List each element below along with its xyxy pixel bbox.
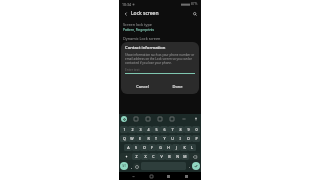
button[interactable]: . [187, 162, 191, 170]
button[interactable]: Clipboard [157, 116, 163, 122]
button[interactable]: 8 [176, 126, 184, 133]
button[interactable]: I [176, 135, 184, 142]
button[interactable]: F [148, 144, 156, 151]
staticText: L [191, 145, 193, 150]
staticText: U [171, 136, 174, 141]
staticText: P [195, 136, 198, 141]
staticText: S [135, 145, 137, 150]
button[interactable]: Search [191, 10, 198, 17]
staticText: 3 [139, 127, 142, 132]
button[interactable]: B [165, 153, 173, 160]
button[interactable]: 9 [184, 126, 192, 133]
button[interactable]: X [141, 153, 149, 160]
button[interactable]: Backspace [189, 153, 200, 160]
staticText: Dynamic Lock screen [123, 36, 161, 41]
button[interactable]: 2 [128, 126, 136, 133]
button[interactable]: S [132, 144, 140, 151]
staticText: R [147, 136, 150, 141]
staticText: T [155, 136, 157, 141]
button[interactable]: Q [120, 135, 128, 142]
staticText: E [139, 136, 141, 141]
staticText: Y [163, 136, 166, 141]
button[interactable]: V [157, 153, 165, 160]
button[interactable]: C [149, 153, 157, 160]
staticText: Q [123, 136, 126, 141]
button[interactable]: Recents [165, 173, 172, 180]
button[interactable]: 0 [192, 126, 200, 133]
button[interactable]: Emoji [169, 116, 175, 122]
button[interactable]: M [181, 153, 189, 160]
button[interactable]: Done [160, 82, 195, 91]
staticText: Screen lock type [123, 22, 152, 27]
staticText: 0 [195, 127, 198, 132]
staticText: 2 [131, 127, 134, 132]
button[interactable]: N [173, 153, 181, 160]
button[interactable]: E [136, 135, 144, 142]
button[interactable]: K [180, 144, 188, 151]
button[interactable]: 4 [144, 126, 152, 133]
staticText: J [176, 145, 177, 150]
staticText: !#1 [122, 164, 127, 168]
button[interactable]: D [140, 144, 148, 151]
button[interactable]: H [164, 144, 172, 151]
staticText: D [143, 145, 146, 150]
staticText: Z [135, 154, 138, 159]
staticText: 7 [171, 127, 174, 132]
button[interactable]: Back [122, 10, 129, 17]
button[interactable]: R [144, 135, 152, 142]
button[interactable]: Voice input [193, 116, 199, 122]
button[interactable]: Done [192, 162, 200, 170]
button[interactable]: GIF [145, 116, 151, 122]
button[interactable]: U [168, 135, 176, 142]
staticText: Done [172, 84, 183, 89]
button[interactable]: 6 [160, 126, 168, 133]
staticText: A [127, 145, 130, 150]
button[interactable]: P [192, 135, 200, 142]
button[interactable]: O [184, 135, 192, 142]
staticText: 5 [155, 127, 158, 132]
button[interactable]: T [152, 135, 160, 142]
staticText: C [152, 154, 155, 159]
button[interactable]: More [181, 116, 187, 122]
staticText: K [183, 145, 186, 150]
button[interactable]: Shift [120, 153, 132, 160]
button[interactable]: Back [130, 173, 137, 180]
button[interactable]: Symbols [120, 162, 128, 170]
staticText: 1 [123, 127, 126, 132]
staticText: , [131, 164, 132, 169]
button[interactable]: Settings [121, 116, 127, 122]
button[interactable]: Y [160, 135, 168, 142]
staticText: M [183, 154, 187, 159]
staticText: Contact information [125, 45, 166, 51]
button[interactable]: Emoji [133, 163, 140, 170]
staticText: N [176, 154, 179, 159]
button[interactable]: 7 [168, 126, 176, 133]
button[interactable]: Enter text [125, 68, 195, 74]
staticText: Cancel [136, 84, 149, 89]
button[interactable]: Dynamic Lock screen [123, 36, 197, 41]
button[interactable]: Home [148, 173, 155, 180]
button[interactable]: Z [132, 153, 141, 160]
staticText: 87% [191, 2, 198, 6]
staticText: Lock screen [131, 10, 159, 17]
staticText: Enter text [125, 68, 140, 72]
staticText: B [168, 154, 171, 159]
button[interactable]: W [128, 135, 136, 142]
staticText: F [151, 145, 153, 150]
button[interactable]: , [129, 162, 133, 170]
button[interactable]: Stickers [133, 116, 139, 122]
button[interactable]: Cancel [125, 82, 160, 91]
button[interactable]: 3 [136, 126, 144, 133]
button[interactable]: L [188, 144, 196, 151]
button[interactable]: Hide keyboard [183, 173, 190, 180]
button[interactable]: Screen lock type [123, 22, 197, 32]
button[interactable]: G [156, 144, 164, 151]
staticText: Pattern, Fingerprints [123, 28, 155, 32]
button[interactable]: A [124, 144, 132, 151]
staticText: 9 [187, 127, 190, 132]
button[interactable]: 5 [152, 126, 160, 133]
button[interactable]: J [172, 144, 180, 151]
staticText: 8 [179, 127, 182, 132]
button[interactable]: 1 [120, 126, 128, 133]
